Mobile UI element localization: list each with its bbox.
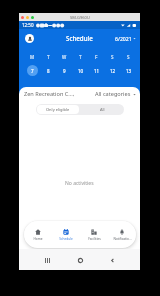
staticText: Only eligible [46,107,70,112]
button[interactable]: Schedule [52,221,80,248]
staticText: 6/2021 [115,35,132,42]
staticText: Facilities [88,237,101,241]
staticText: M [30,54,35,60]
staticText: Schedule [66,34,93,42]
button[interactable]: Home [75,255,85,265]
staticText: All [100,107,105,112]
staticText: F [95,54,98,60]
button[interactable]: 10 [75,65,86,76]
button[interactable]: Back [107,255,117,265]
button[interactable]: Notificatio... [108,221,136,248]
button[interactable]: Home [24,221,52,248]
staticText: No activities [65,180,94,187]
button[interactable]: 7 [27,65,38,76]
staticText: 8 [47,68,50,74]
staticText: 12 [110,68,116,74]
staticText: 10 [78,68,84,74]
button[interactable]: All [80,104,124,115]
button[interactable]: 12 [107,65,118,76]
staticText: S [111,54,114,60]
button[interactable]: Recents [42,255,52,265]
staticText: 7 [31,68,34,74]
staticText: SM-G960U [70,15,90,20]
button[interactable]: 11 [91,65,102,76]
button[interactable]: 6/2021 [115,35,136,42]
staticText: 9 [63,68,66,74]
staticText: Zen Recreation C..., [24,90,75,98]
staticText: Schedule [59,237,73,241]
staticText: T [47,54,50,60]
staticText: 11 [94,68,100,74]
staticText: 12:50 [22,22,34,28]
button[interactable]: Only eligible [37,105,79,114]
staticText: W [62,54,67,60]
staticText: All categories [95,90,131,98]
button[interactable]: All categories [95,90,136,98]
button[interactable]: Facilities [80,221,108,248]
staticText: 13 [126,68,132,74]
button[interactable]: Profile [25,34,34,43]
staticText: S [127,54,130,60]
button[interactable]: Zen Recreation C..., [24,90,75,98]
button[interactable]: 8 [43,65,54,76]
staticText: Notificatio... [113,237,132,241]
staticText: Home [33,237,43,241]
button[interactable]: 9 [59,65,70,76]
button[interactable]: 13 [123,65,134,76]
staticText: T [79,54,82,60]
